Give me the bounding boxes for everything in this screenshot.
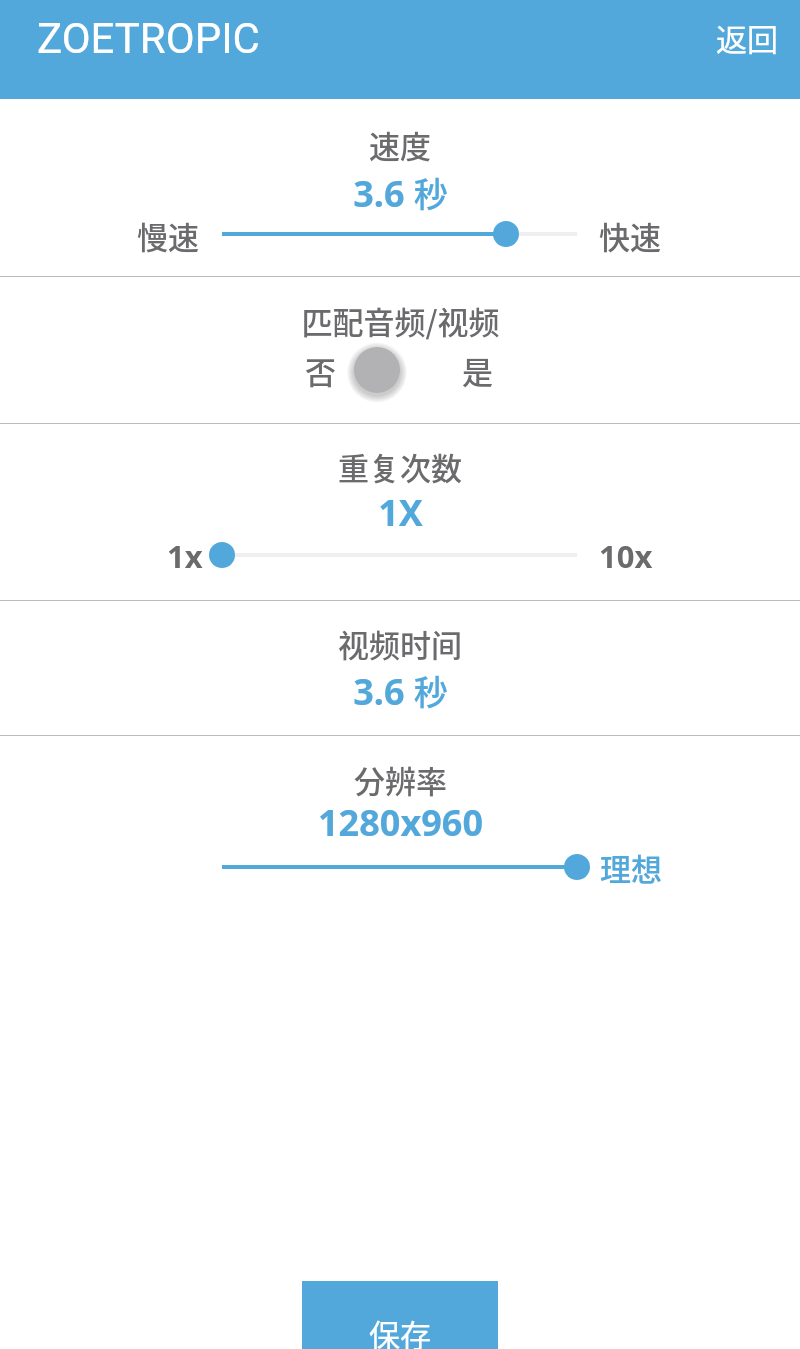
staticText: 快速 — [599, 213, 661, 258]
staticText: 理想 — [600, 845, 662, 890]
staticText: ZOETROPIC — [37, 14, 260, 63]
staticText: 视频时间 — [338, 621, 462, 666]
staticText: 慢速 — [137, 213, 199, 258]
button[interactable]: 保存 — [302, 1281, 498, 1349]
button[interactable]: Repeat count slider — [209, 532, 590, 578]
staticText: 返回 — [716, 15, 778, 60]
staticText: 重复次数 — [338, 444, 462, 489]
staticText: 匹配音频/视频 — [301, 298, 500, 343]
staticText: 是 — [462, 348, 493, 393]
staticText: 否 — [305, 348, 336, 393]
staticText: 速度 — [369, 122, 431, 167]
staticText: 1X — [378, 488, 423, 537]
staticText: 1280x960 — [318, 798, 483, 847]
button[interactable]: Resolution slider — [209, 844, 590, 890]
staticText: 3.6 秒 — [353, 168, 448, 218]
staticText: 10x — [599, 535, 653, 577]
staticText: 3.6 秒 — [353, 666, 448, 716]
staticText: 保存 — [369, 1311, 431, 1349]
button[interactable]: Match audio and video, currently off — [346, 339, 408, 401]
staticText: 1x — [167, 535, 203, 577]
staticText: 分辨率 — [354, 757, 447, 802]
button[interactable]: Back — [690, 0, 800, 84]
button[interactable]: Speed slider — [209, 211, 590, 257]
